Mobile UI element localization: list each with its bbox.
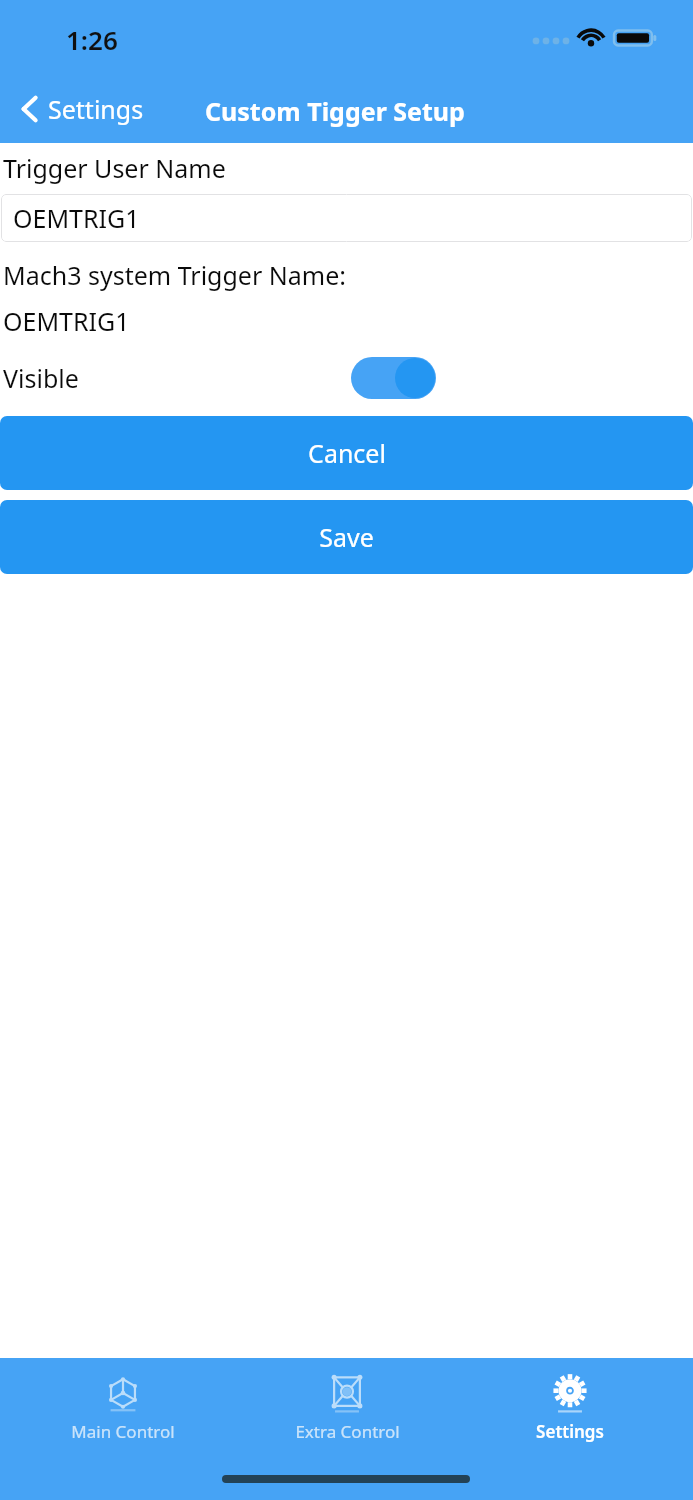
staticText: Custom Tigger Setup: [205, 94, 465, 128]
staticText: Cancel: [308, 436, 386, 470]
button[interactable]: Visible toggle: [351, 357, 436, 399]
button[interactable]: Settings: [14, 86, 150, 132]
staticText: Save: [319, 520, 374, 554]
button[interactable]: Main Control: [23, 1358, 223, 1443]
staticText: Settings: [48, 92, 144, 126]
button[interactable]: OEMTRIG1: [1, 194, 692, 242]
staticText: Settings: [536, 1420, 604, 1443]
button[interactable]: Save: [0, 500, 693, 574]
button[interactable]: Cancel: [0, 416, 693, 490]
staticText: Main Control: [71, 1420, 175, 1443]
button[interactable]: Settings: [470, 1358, 670, 1443]
staticText: Extra Control: [295, 1420, 400, 1443]
staticText: Mach3 system Trigger Name:: [3, 258, 346, 292]
staticText: OEMTRIG1: [13, 201, 140, 235]
staticText: OEMTRIG1: [3, 304, 130, 338]
staticText: 1:26: [66, 22, 118, 57]
staticText: Trigger User Name: [3, 151, 226, 185]
button[interactable]: Extra Control: [247, 1358, 447, 1443]
staticText: Visible: [3, 361, 79, 395]
